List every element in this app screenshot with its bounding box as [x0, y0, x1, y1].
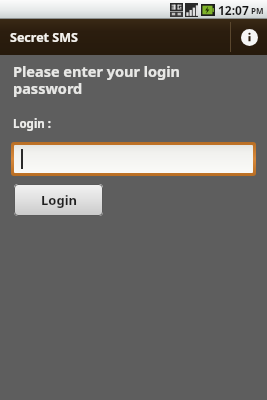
button[interactable]: About: [231, 19, 267, 55]
staticText: Secret SMS: [10, 29, 78, 46]
staticText: Login :: [13, 116, 52, 132]
staticText: 12:07: [218, 2, 249, 18]
staticText: Login: [41, 191, 77, 209]
staticText: PM: [251, 5, 264, 16]
button[interactable]: Login: [14, 184, 103, 216]
button[interactable]: [14, 145, 253, 173]
staticText: Please enter your login password: [13, 61, 207, 98]
